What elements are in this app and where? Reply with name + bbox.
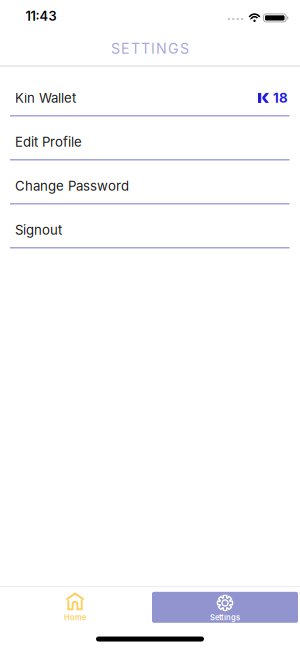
staticText: Settings [210, 613, 240, 622]
staticText: Home [64, 613, 86, 622]
staticText: Kin Wallet [15, 90, 76, 106]
staticText: 11:43 [25, 8, 56, 24]
button[interactable]: Kin Wallet [0, 66, 300, 116]
staticText: SETTINGS [111, 40, 189, 57]
button[interactable]: Signout [0, 204, 300, 248]
staticText: Edit Profile [15, 134, 82, 150]
button[interactable]: Home [2, 592, 148, 623]
button[interactable]: Change Password [0, 160, 300, 204]
staticText: 18 [273, 90, 288, 106]
staticText: Signout [15, 222, 62, 238]
button[interactable]: Edit Profile [0, 116, 300, 160]
button[interactable]: Settings [152, 592, 298, 623]
staticText: Change Password [15, 178, 129, 194]
